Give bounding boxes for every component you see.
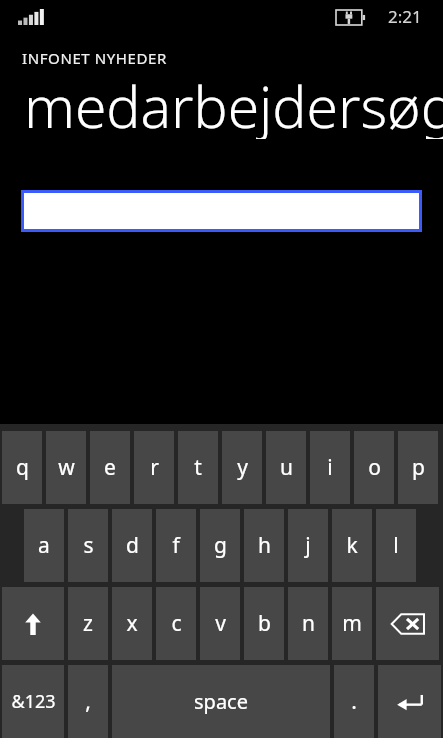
- staticText: z: [83, 609, 93, 638]
- staticText: INFONET NYHEDER: [22, 48, 167, 68]
- staticText: q: [16, 453, 29, 482]
- button[interactable]: .: [334, 665, 374, 738]
- button[interactable]: y: [222, 431, 262, 504]
- staticText: a: [38, 531, 50, 560]
- staticText: j: [305, 531, 311, 560]
- staticText: x: [126, 609, 138, 638]
- button[interactable]: b: [244, 587, 284, 660]
- button[interactable]: o: [354, 431, 394, 504]
- staticText: t: [194, 453, 202, 482]
- button[interactable]: f: [156, 509, 196, 582]
- button[interactable]: u: [266, 431, 306, 504]
- button[interactable]: Shift: [2, 587, 64, 660]
- staticText: .: [351, 687, 357, 716]
- staticText: v: [215, 609, 226, 638]
- button[interactable]: h: [244, 509, 284, 582]
- button[interactable]: r: [134, 431, 174, 504]
- staticText: c: [171, 609, 182, 638]
- staticText: h: [258, 531, 271, 560]
- staticText: k: [346, 531, 358, 560]
- button[interactable]: k: [332, 509, 372, 582]
- button[interactable]: q: [2, 431, 42, 504]
- staticText: 2:21: [388, 5, 422, 28]
- button[interactable]: &123: [2, 665, 64, 738]
- staticText: f: [172, 531, 180, 560]
- button[interactable]: space: [112, 665, 330, 738]
- button[interactable]: i: [310, 431, 350, 504]
- staticText: n: [302, 609, 315, 638]
- button[interactable]: t: [178, 431, 218, 504]
- staticText: g: [214, 531, 227, 560]
- staticText: &123: [11, 689, 56, 714]
- staticText: o: [368, 453, 381, 482]
- button[interactable]: m: [332, 587, 372, 660]
- button[interactable]: e: [90, 431, 130, 504]
- button[interactable]: z: [68, 587, 108, 660]
- staticText: ,: [85, 687, 91, 716]
- button[interactable]: n: [288, 587, 328, 660]
- button[interactable]: Enter: [378, 665, 441, 738]
- staticText: w: [58, 453, 75, 482]
- button[interactable]: a: [24, 509, 64, 582]
- staticText: b: [258, 609, 271, 638]
- staticText: e: [104, 453, 116, 482]
- staticText: p: [412, 453, 425, 482]
- staticText: medarbejdersøgning: [24, 75, 443, 139]
- staticText: u: [280, 453, 293, 482]
- staticText: i: [327, 453, 333, 482]
- button[interactable]: l: [376, 509, 416, 582]
- button[interactable]: [21, 190, 422, 232]
- staticText: d: [126, 531, 139, 560]
- staticText: r: [150, 453, 159, 482]
- staticText: m: [342, 609, 362, 638]
- staticText: y: [237, 453, 248, 482]
- staticText: l: [393, 531, 399, 560]
- button[interactable]: g: [200, 509, 240, 582]
- button[interactable]: x: [112, 587, 152, 660]
- staticText: s: [83, 531, 94, 560]
- button[interactable]: ,: [68, 665, 108, 738]
- button[interactable]: d: [112, 509, 152, 582]
- staticText: space: [194, 688, 248, 715]
- button[interactable]: c: [156, 587, 196, 660]
- button[interactable]: w: [46, 431, 86, 504]
- button[interactable]: Backspace: [376, 587, 439, 660]
- button[interactable]: s: [68, 509, 108, 582]
- button[interactable]: v: [200, 587, 240, 660]
- button[interactable]: p: [398, 431, 438, 504]
- button[interactable]: j: [288, 509, 328, 582]
